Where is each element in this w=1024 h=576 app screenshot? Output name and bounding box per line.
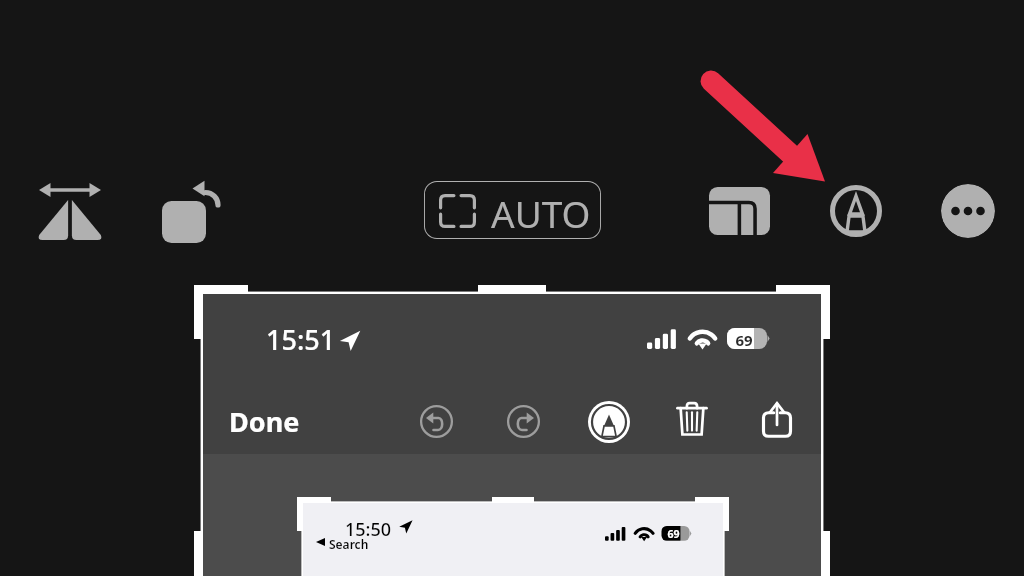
- staticText: AUTO: [491, 188, 591, 238]
- button[interactable]: Delete: [676, 401, 708, 438]
- button[interactable]: Markup: [588, 401, 630, 443]
- button[interactable]: AUTO: [424, 181, 601, 239]
- button[interactable]: Share: [762, 400, 792, 438]
- staticText: 69: [735, 330, 753, 350]
- button[interactable]: Markup: [830, 185, 882, 237]
- button[interactable]: Layout: [709, 187, 770, 235]
- staticText: 15:50: [345, 517, 392, 542]
- button[interactable]: Rotate: [161, 180, 218, 244]
- button[interactable]: More options: [941, 184, 995, 238]
- staticText: 69: [667, 527, 680, 541]
- button[interactable]: Flip: [38, 184, 102, 240]
- button[interactable]: Done: [229, 403, 300, 440]
- button[interactable]: Redo: [507, 405, 540, 438]
- button[interactable]: Search: [329, 536, 369, 552]
- button[interactable]: Undo: [420, 405, 453, 438]
- staticText: 15:51: [266, 321, 336, 358]
